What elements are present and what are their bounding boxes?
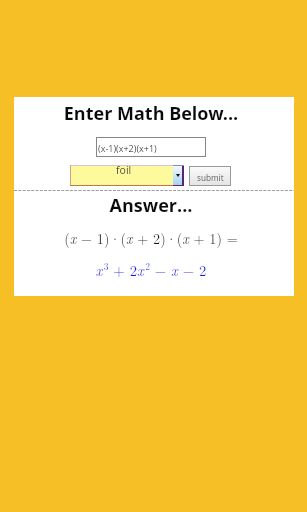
button[interactable]: Math expression input	[96, 137, 206, 157]
button[interactable]: submit	[189, 166, 231, 186]
staticText: Enter Math Below...	[11, 101, 291, 126]
staticText: x 3 + 2x 2 − x − 2	[11, 259, 291, 281]
staticText: submit	[197, 172, 224, 183]
staticText: (x-1)(x+2)(x+1)	[98, 142, 157, 154]
staticText: (x − 1)·(x + 2)·(x + 1) =	[11, 228, 291, 248]
button[interactable]: Operation selector: foil	[70, 165, 184, 186]
staticText: foil	[116, 163, 132, 177]
staticText: Answer...	[11, 193, 291, 218]
